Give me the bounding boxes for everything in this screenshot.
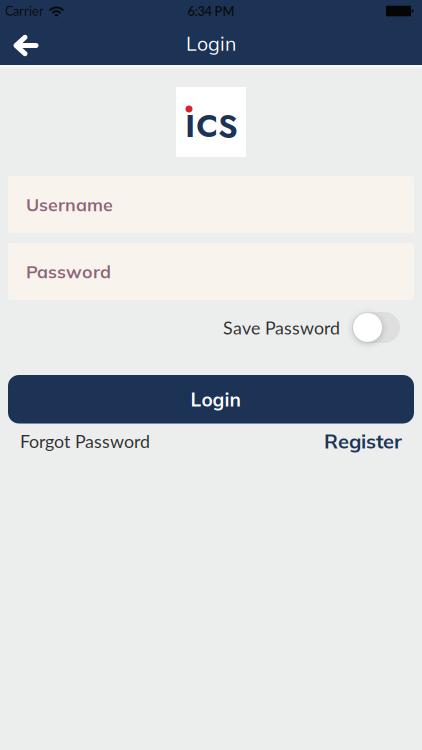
staticText: ıcs [184, 88, 238, 154]
button[interactable]: Save Password [352, 312, 400, 343]
staticText: Forgot Password [20, 430, 150, 452]
staticText: Save Password [223, 317, 340, 338]
button[interactable]: Login [0, 375, 422, 423]
button[interactable]: Password [0, 243, 422, 300]
staticText: Login [186, 31, 236, 56]
staticText: Carrier [5, 3, 44, 18]
button[interactable]: Register [324, 428, 402, 454]
staticText: Password [26, 260, 111, 283]
button[interactable]: Back [0, 28, 38, 58]
staticText: 6:34 PM [187, 3, 234, 19]
staticText: Login [190, 387, 240, 411]
button[interactable]: Username [0, 176, 422, 233]
staticText: Username [26, 193, 113, 216]
staticText: Register [324, 428, 402, 454]
button[interactable]: Forgot Password [20, 430, 150, 452]
